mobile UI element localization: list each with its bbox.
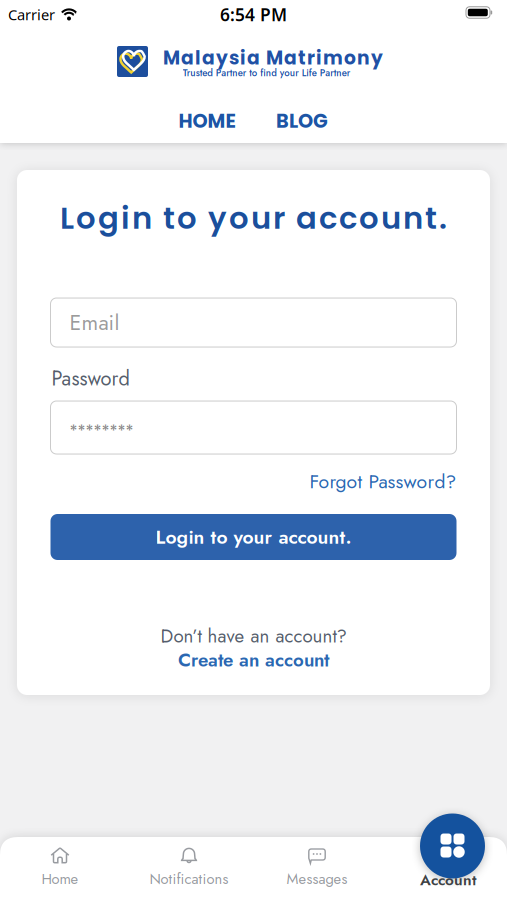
staticText: Email [69,307,119,338]
button[interactable]: BLOG [270,108,334,134]
button[interactable]: Account [412,810,492,890]
button[interactable]: Malaysia Matrimony [117,46,148,77]
staticText: BLOG [276,107,328,135]
staticText: Password [51,364,129,393]
staticText: Create an account [178,646,329,673]
staticText: HOME [178,107,235,135]
button[interactable]: Home [5,838,115,894]
staticText: Carrier [8,5,55,24]
staticText: Messages [286,868,347,890]
staticText: Home [41,868,78,890]
button[interactable]: HOME [172,108,242,134]
staticText: ******** [69,420,133,442]
staticText: 6:54 PM [220,3,287,26]
button[interactable]: Create an account [153,648,353,672]
button[interactable]: Forgot Password? [309,467,456,495]
button[interactable]: Login to your account. [50,514,456,560]
staticText: Login to your account. [155,523,351,551]
staticText: Forgot Password? [309,467,456,495]
staticText: M a l a y s i a M a t r i m o n y [163,45,383,71]
staticText: Trusted Partner to find your Life Partne… [99,59,434,87]
staticText: Don’t have an account? [160,622,346,649]
staticText: Account [420,869,477,891]
button[interactable]: Notifications [134,838,244,894]
staticText: L o g i n t o y o u r a c c o u n t . [60,196,447,239]
button[interactable]: Messages [262,838,372,894]
staticText: Notifications [149,868,228,890]
